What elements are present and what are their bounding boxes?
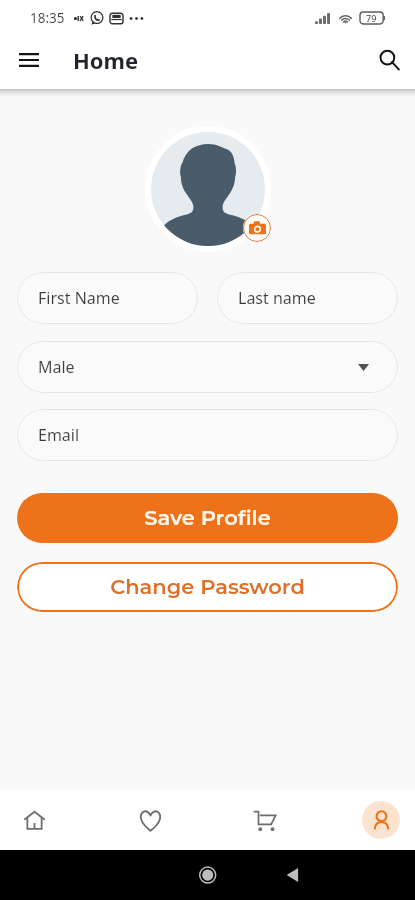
button[interactable]: Save Profile [17, 493, 398, 543]
staticText: Male [38, 356, 75, 378]
button[interactable]: Change photo [243, 214, 271, 242]
button[interactable]: Menu [7, 38, 51, 82]
staticText: First Name [38, 287, 120, 309]
button[interactable]: Profile photo [151, 132, 265, 246]
staticText: 18:35 [30, 9, 65, 27]
button[interactable]: Home [10, 796, 58, 844]
button[interactable]: Change Password [17, 562, 398, 612]
staticText: 79 [366, 12, 377, 24]
staticText: Home [73, 45, 139, 75]
staticText: Email [38, 424, 80, 446]
button[interactable]: First Name [17, 272, 198, 324]
staticText: Save Profile [144, 505, 271, 531]
button[interactable]: Favorites [126, 796, 174, 844]
button[interactable]: Profile [357, 796, 405, 844]
button[interactable]: Male [17, 341, 398, 393]
staticText: Change Password [110, 574, 305, 600]
button[interactable]: Email [17, 409, 398, 461]
button[interactable]: Last name [217, 272, 398, 324]
button[interactable]: Cart [241, 796, 289, 844]
button[interactable]: Search [367, 38, 411, 82]
staticText: Last name [238, 287, 316, 309]
